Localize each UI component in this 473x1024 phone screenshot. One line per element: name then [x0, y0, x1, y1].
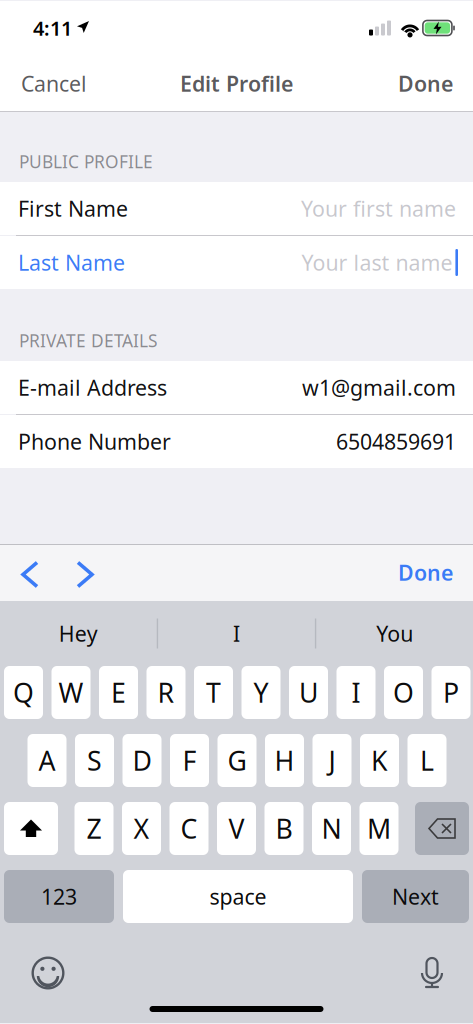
button[interactable]: W	[51, 666, 90, 719]
staticText: Done	[398, 69, 453, 98]
staticText: B	[275, 811, 292, 846]
button[interactable]: Y	[241, 666, 280, 719]
staticText: Edit Profile	[180, 69, 293, 98]
button[interactable]: P	[431, 666, 470, 719]
button[interactable]: 123	[4, 870, 114, 923]
staticText: E	[111, 675, 126, 710]
staticText: 6504859691	[336, 427, 456, 456]
button[interactable]: You	[316, 601, 473, 665]
button[interactable]: Shift	[4, 802, 58, 855]
button[interactable]: V	[217, 802, 256, 855]
button[interactable]: M	[359, 802, 398, 855]
button[interactable]: Phone Number	[0, 415, 473, 468]
staticText: M	[367, 811, 391, 846]
staticText: T	[206, 675, 221, 710]
staticText: w1@gmail.com	[302, 373, 456, 402]
staticText: Cancel	[21, 69, 87, 98]
staticText: O	[393, 675, 414, 710]
button[interactable]: Done	[378, 59, 473, 108]
staticText: Hey	[59, 619, 98, 648]
staticText: U	[299, 675, 318, 710]
button[interactable]: S	[75, 734, 114, 787]
button[interactable]: N	[312, 802, 351, 855]
button[interactable]: E	[99, 666, 138, 719]
staticText: F	[182, 743, 196, 778]
button[interactable]: J	[312, 734, 351, 787]
staticText: W	[58, 675, 83, 710]
button[interactable]: Dictate	[420, 956, 444, 990]
button[interactable]: space	[123, 870, 353, 923]
staticText: Your first name	[301, 194, 456, 223]
staticText: PRIVATE DETAILS	[19, 329, 158, 352]
button[interactable]: Last Name	[0, 236, 473, 289]
button[interactable]: I	[158, 601, 315, 665]
button[interactable]: I	[336, 666, 375, 719]
button[interactable]: R	[146, 666, 185, 719]
staticText: Next	[392, 882, 439, 911]
button[interactable]: Next field	[58, 546, 113, 598]
staticText: G	[227, 743, 246, 778]
staticText: Z	[86, 811, 101, 846]
button[interactable]: K	[360, 734, 399, 787]
button[interactable]: Q	[4, 666, 43, 719]
button[interactable]: A	[27, 734, 66, 787]
button[interactable]: T	[194, 666, 233, 719]
staticText: I	[351, 675, 360, 710]
staticText: A	[38, 743, 55, 778]
button[interactable]: G	[217, 734, 256, 787]
staticText: Y	[253, 675, 268, 710]
staticText: You	[376, 619, 413, 648]
staticText: C	[180, 811, 197, 846]
staticText: V	[228, 811, 244, 846]
staticText: Done	[398, 558, 453, 587]
staticText: N	[321, 811, 341, 846]
staticText: First Name	[18, 194, 128, 223]
staticText: L	[420, 743, 434, 778]
button[interactable]: Next	[362, 870, 469, 923]
staticText: Last Name	[18, 248, 125, 277]
button[interactable]: C	[169, 802, 208, 855]
button[interactable]: Z	[74, 802, 113, 855]
button[interactable]: Hey	[0, 601, 157, 665]
button[interactable]: E-mail Address	[0, 361, 473, 414]
button[interactable]: L	[407, 734, 446, 787]
button[interactable]: First Name	[0, 182, 473, 235]
staticText: 123	[41, 882, 77, 911]
staticText: Q	[13, 675, 34, 710]
button[interactable]: Done	[378, 544, 473, 601]
staticText: S	[87, 743, 102, 778]
button[interactable]: O	[384, 666, 423, 719]
button[interactable]: F	[170, 734, 209, 787]
button[interactable]: H	[265, 734, 304, 787]
button[interactable]: X	[122, 802, 161, 855]
staticText: D	[132, 743, 151, 778]
staticText: I	[233, 619, 240, 648]
staticText: E-mail Address	[18, 373, 167, 402]
staticText: R	[157, 675, 174, 710]
staticText: X	[133, 811, 149, 846]
button[interactable]: Cancel	[0, 59, 108, 108]
button[interactable]: Previous field	[0, 546, 58, 598]
button[interactable]: Emoji	[31, 956, 65, 990]
button[interactable]: D	[122, 734, 161, 787]
button[interactable]: U	[289, 666, 328, 719]
staticText: K	[371, 743, 388, 778]
button[interactable]: Delete	[415, 802, 469, 855]
staticText: PUBLIC PROFILE	[19, 150, 153, 173]
button[interactable]: B	[264, 802, 303, 855]
staticText: H	[274, 743, 294, 778]
staticText: P	[443, 675, 459, 710]
staticText: Phone Number	[18, 427, 171, 456]
staticText: J	[328, 743, 335, 778]
staticText: space	[209, 882, 266, 911]
staticText: 4:11	[33, 15, 72, 41]
staticText: Your last name	[301, 248, 452, 277]
